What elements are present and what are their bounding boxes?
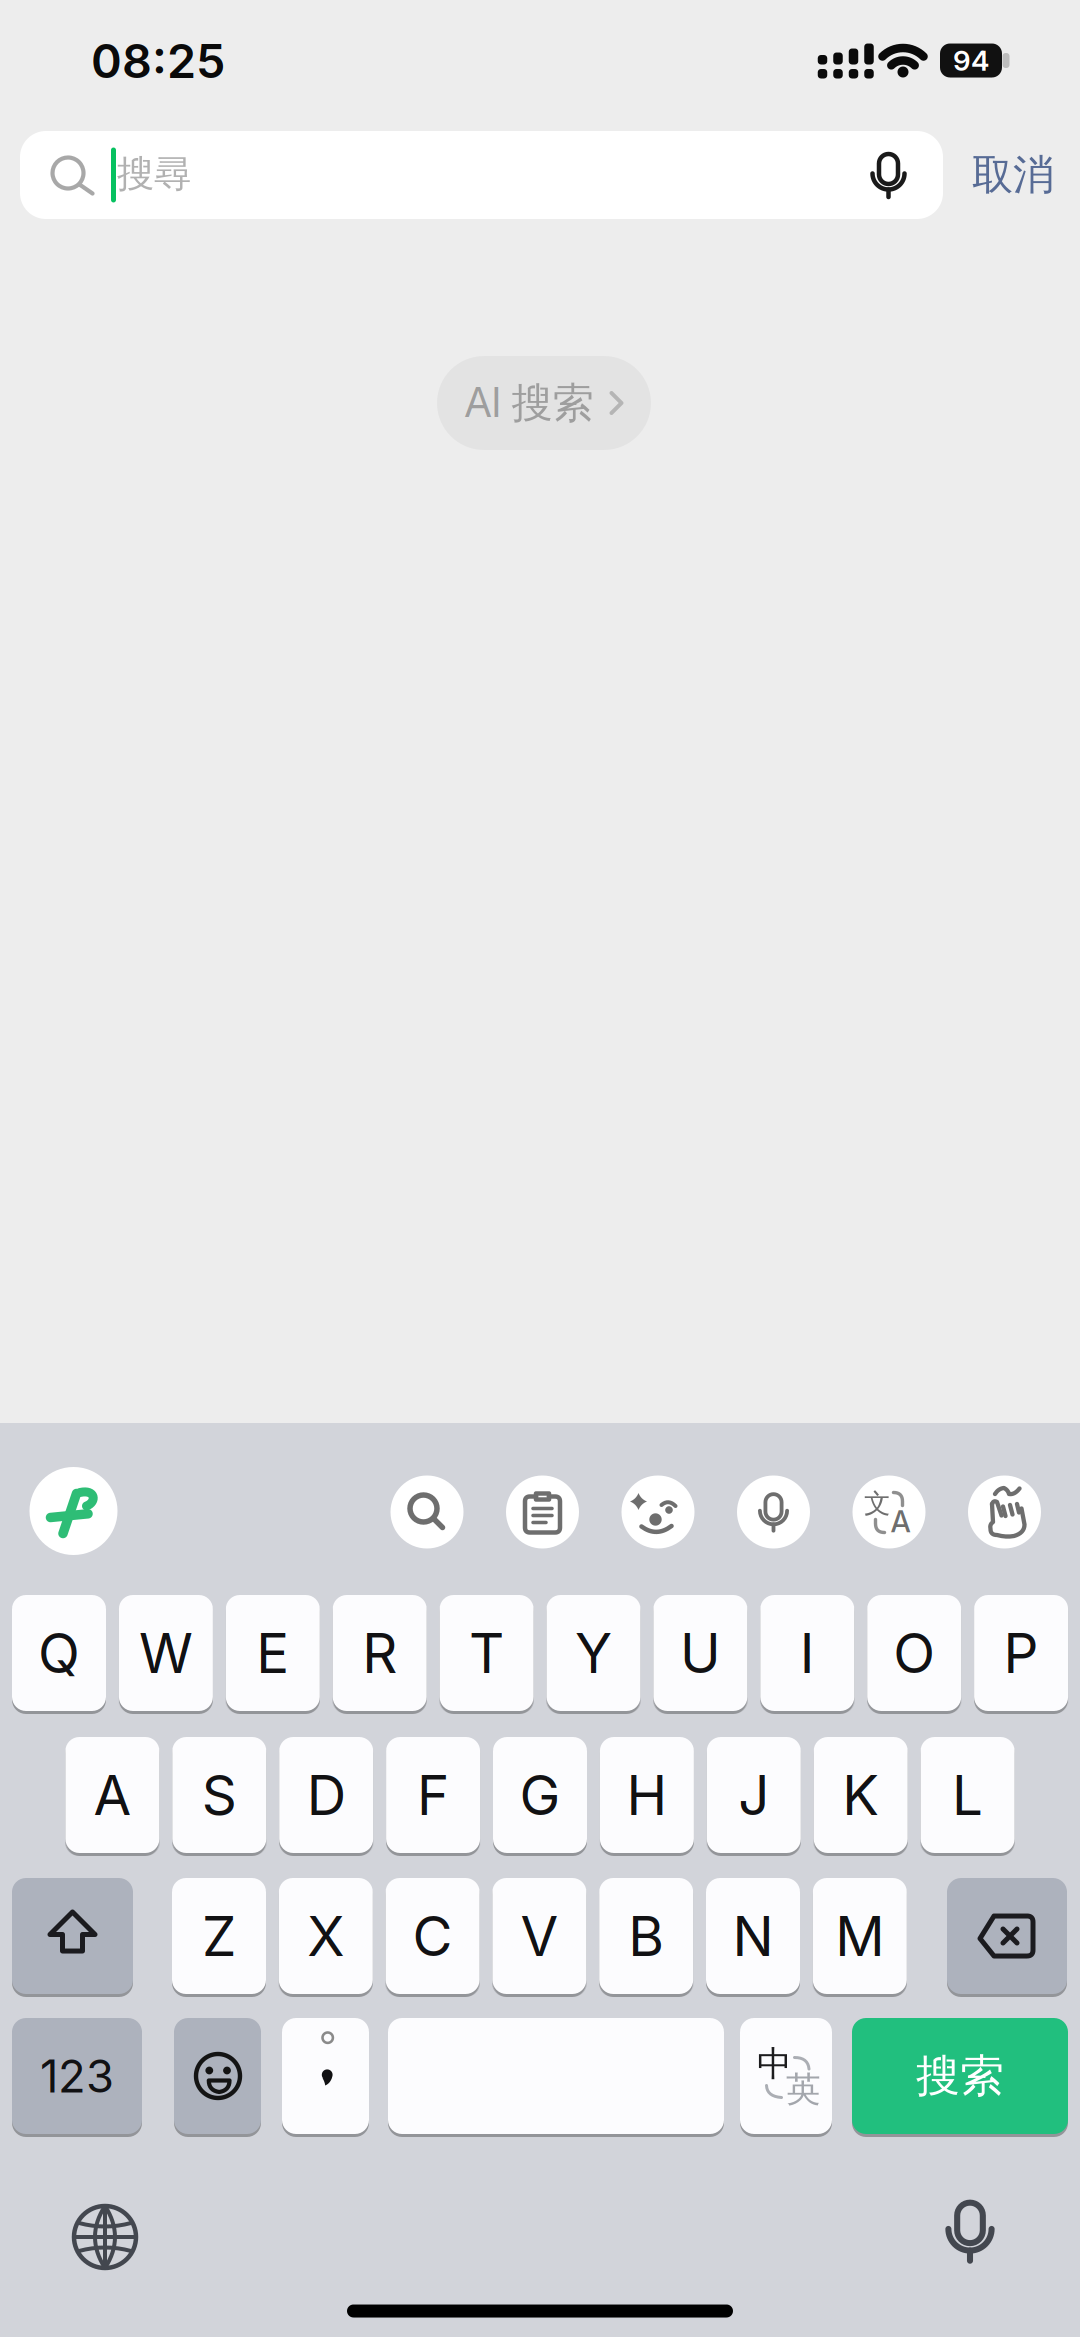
button[interactable]: Numbers	[12, 2018, 142, 2134]
staticText: 英	[786, 2068, 821, 2111]
button[interactable]: A	[65, 1737, 159, 1853]
button[interactable]: AI 搜索	[437, 356, 651, 450]
staticText: M	[835, 1904, 884, 1968]
button[interactable]: Shift	[12, 1878, 133, 1994]
staticText: Y	[575, 1621, 612, 1685]
button[interactable]: Next keyboard	[65, 2197, 145, 2277]
staticText: F	[417, 1763, 449, 1827]
staticText: U	[680, 1621, 721, 1685]
button[interactable]: Comma	[282, 2018, 369, 2134]
staticText: Z	[202, 1904, 236, 1968]
staticText: Q	[38, 1621, 80, 1685]
staticText: 中	[757, 2043, 792, 2085]
button[interactable]: W	[119, 1595, 213, 1711]
button[interactable]: Delete	[947, 1878, 1067, 1994]
staticText: 文	[864, 1487, 891, 1520]
staticText: D	[307, 1763, 346, 1827]
staticText: 08:25	[91, 33, 225, 89]
button[interactable]: Dictation	[935, 2196, 1015, 2276]
staticText: K	[842, 1763, 879, 1827]
button[interactable]: Z	[172, 1878, 266, 1994]
staticText: S	[202, 1763, 237, 1827]
staticText: G	[519, 1763, 560, 1827]
button[interactable]: J	[707, 1737, 801, 1853]
staticText: C	[413, 1904, 453, 1968]
button[interactable]: M	[813, 1878, 907, 1994]
button[interactable]: Stickers	[621, 1475, 694, 1548]
button[interactable]: Clipboard	[506, 1475, 579, 1548]
button[interactable]: Voice search	[853, 140, 923, 210]
button[interactable]: L	[921, 1737, 1015, 1853]
button[interactable]: G	[493, 1737, 587, 1853]
staticText: X	[307, 1904, 344, 1968]
button[interactable]: Gesture input	[968, 1475, 1041, 1548]
button[interactable]: Search	[852, 2018, 1068, 2134]
button[interactable]: T	[440, 1595, 534, 1711]
staticText: H	[626, 1763, 667, 1827]
button[interactable]: Y	[546, 1595, 640, 1711]
button[interactable]: Translate	[852, 1475, 925, 1548]
button[interactable]: Dictation	[737, 1475, 810, 1548]
staticText: I	[800, 1621, 815, 1685]
staticText: AI 搜索	[464, 377, 593, 428]
button[interactable]: H	[600, 1737, 694, 1853]
button[interactable]: Q	[12, 1595, 106, 1711]
staticText: 94	[953, 44, 989, 77]
button[interactable]: D	[279, 1737, 373, 1853]
staticText: L	[952, 1763, 983, 1827]
button[interactable]: U	[653, 1595, 747, 1711]
button[interactable]: F	[386, 1737, 480, 1853]
staticText: 123	[40, 2049, 114, 2103]
button[interactable]: WeChat Keyboard	[29, 1467, 117, 1555]
staticText: N	[732, 1904, 773, 1968]
button[interactable]: N	[706, 1878, 800, 1994]
button[interactable]: S	[172, 1737, 266, 1853]
button[interactable]: V	[492, 1878, 586, 1994]
staticText: R	[362, 1621, 397, 1685]
staticText: A	[93, 1763, 131, 1827]
staticText: T	[469, 1621, 504, 1685]
button[interactable]: P	[974, 1595, 1068, 1711]
staticText: 取消	[972, 150, 1054, 200]
staticText: O	[893, 1621, 935, 1685]
button[interactable]: Search	[390, 1475, 463, 1548]
staticText: V	[520, 1904, 558, 1968]
staticText: 搜索	[916, 2049, 1004, 2103]
button[interactable]: E	[226, 1595, 320, 1711]
button[interactable]: R	[333, 1595, 427, 1711]
button[interactable]: I	[760, 1595, 854, 1711]
staticText: E	[256, 1621, 289, 1685]
button[interactable]: 取消	[958, 131, 1068, 219]
button[interactable]: C	[386, 1878, 480, 1994]
button[interactable]: Emoji	[174, 2018, 261, 2134]
staticText: A	[890, 1504, 910, 1539]
button[interactable]: Space	[388, 2018, 724, 2134]
staticText: B	[628, 1904, 664, 1968]
staticText: J	[738, 1763, 769, 1827]
staticText: P	[1004, 1621, 1039, 1685]
staticText: W	[139, 1621, 193, 1685]
button[interactable]: O	[867, 1595, 961, 1711]
staticText: 搜尋	[117, 151, 191, 197]
button[interactable]: K	[814, 1737, 908, 1853]
button[interactable]: Toggle Chinese/English	[740, 2018, 832, 2134]
button[interactable]: X	[279, 1878, 373, 1994]
button[interactable]: B	[599, 1878, 693, 1994]
